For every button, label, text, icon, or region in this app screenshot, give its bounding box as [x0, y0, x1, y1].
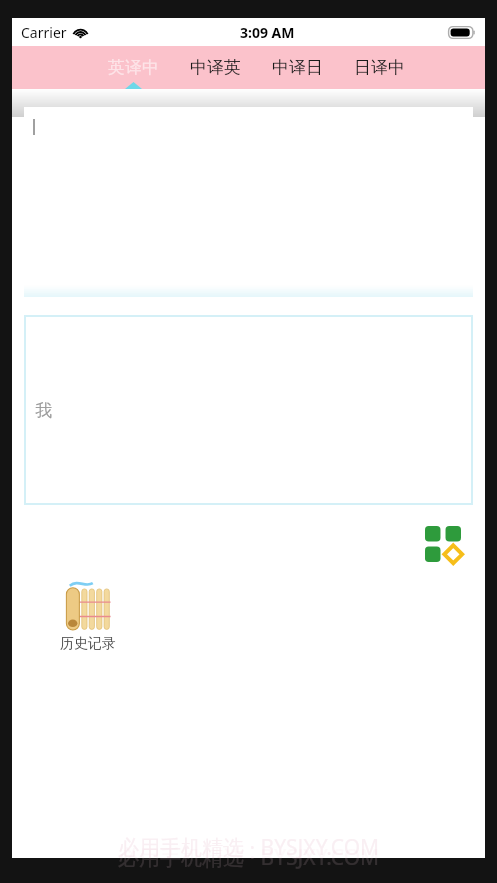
staticText: 中译日 [272, 57, 323, 78]
staticText: 3:09 AM [240, 23, 295, 42]
staticText: 我 [35, 400, 52, 421]
staticText: 中译英 [190, 57, 241, 78]
staticText: 历史记录 [60, 635, 116, 653]
staticText: 英译中 [108, 57, 159, 78]
staticText: Carrier [21, 23, 67, 42]
staticText: 必用手机精选 · BYSJXY.COM [118, 833, 380, 862]
button[interactable]: 日译中 [338, 46, 420, 89]
button[interactable] [24, 107, 473, 297]
button[interactable]: 英译中 [92, 46, 174, 89]
button[interactable]: 中译英 [174, 46, 256, 89]
button[interactable]: 中译日 [256, 46, 338, 89]
button[interactable]: More tools [424, 525, 462, 563]
staticText: 日译中 [354, 57, 405, 78]
staticText: 必用手机精选 · BYSJXY.COM [118, 843, 380, 872]
button[interactable]: 历史记录 [54, 579, 122, 653]
